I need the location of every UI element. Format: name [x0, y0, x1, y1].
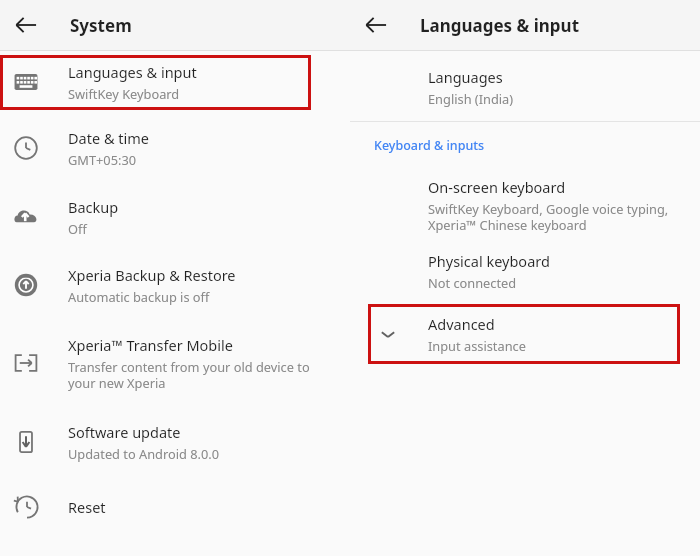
button[interactable]: Date & time	[0, 113, 350, 183]
staticText: Transfer content from your old device to…	[68, 358, 310, 392]
button[interactable]: Software update	[0, 407, 350, 477]
staticText: Languages	[428, 67, 503, 87]
button[interactable]: Xperia™ Transfer Mobile	[0, 319, 350, 407]
button[interactable]: On-screen keyboard	[350, 168, 700, 242]
staticText: Backup	[68, 197, 119, 217]
staticText: Not connected	[428, 274, 517, 291]
button[interactable]: Reset	[0, 477, 350, 537]
button[interactable]: Advanced	[350, 300, 700, 368]
staticText: Languages & input	[420, 14, 580, 37]
staticText: SwiftKey Keyboard	[68, 85, 180, 102]
staticText: On-screen keyboard	[428, 177, 566, 197]
staticText: Physical keyboard	[428, 251, 550, 271]
staticText: Advanced	[428, 314, 495, 334]
staticText: System	[70, 14, 132, 37]
button[interactable]: Languages & input	[0, 51, 350, 113]
button[interactable]: Physical keyboard	[350, 242, 700, 300]
staticText: Input assistance	[428, 337, 526, 354]
button[interactable]: Languages	[350, 59, 700, 115]
staticText: Reset	[68, 497, 106, 517]
staticText: English (India)	[428, 90, 514, 107]
staticText: SwiftKey Keyboard, Google voice typing, …	[428, 200, 669, 234]
staticText: Xperia Backup & Restore	[68, 265, 236, 285]
staticText: Updated to Android 8.0.0	[68, 445, 220, 462]
staticText: Software update	[68, 422, 181, 442]
staticText: GMT+05:30	[68, 151, 137, 168]
staticText: Languages & input	[68, 62, 197, 82]
button[interactable]: Xperia Backup & Restore	[0, 251, 350, 319]
staticText: Xperia™ Transfer Mobile	[68, 335, 233, 355]
staticText: Automatic backup is off	[68, 288, 210, 305]
staticText: Off	[68, 220, 87, 237]
button[interactable]: Backup	[0, 183, 350, 251]
button[interactable]: Back	[364, 13, 388, 37]
staticText: Keyboard & inputs	[374, 137, 485, 154]
button[interactable]: Back	[14, 13, 38, 37]
staticText: Date & time	[68, 128, 149, 148]
